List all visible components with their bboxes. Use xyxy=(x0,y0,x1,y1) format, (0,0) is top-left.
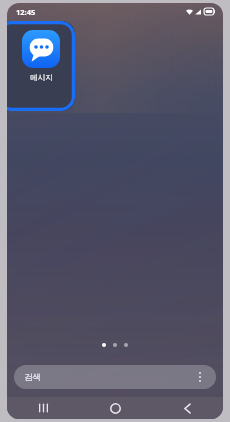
staticText: 메시지 xyxy=(30,73,53,82)
staticText: 12:45 xyxy=(16,7,36,17)
button[interactable]: 뒤로 xyxy=(151,397,223,419)
button[interactable]: 더보기 xyxy=(194,371,206,383)
button[interactable]: 최근 앱 xyxy=(7,397,79,419)
button[interactable]: 홈 xyxy=(79,397,151,419)
button[interactable]: 검색 xyxy=(14,365,216,389)
button[interactable]: 메시지 앱 선택 xyxy=(7,21,75,111)
staticText: 검색 xyxy=(24,372,194,383)
